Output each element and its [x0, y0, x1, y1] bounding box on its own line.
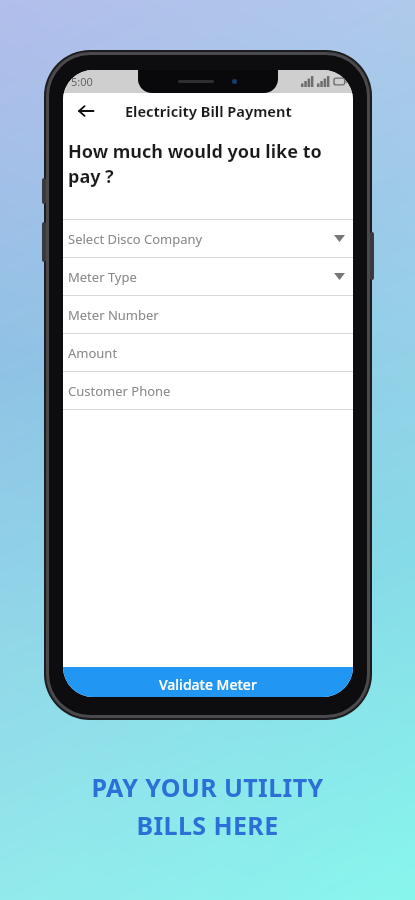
button[interactable]: Select Disco Company	[63, 219, 353, 257]
button[interactable]: Customer Phone	[63, 371, 353, 409]
button[interactable]: Meter Type	[63, 257, 353, 295]
staticText: 5:00	[71, 74, 93, 89]
staticText: Validate Meter	[159, 675, 257, 694]
staticText: Electricity Bill Payment	[125, 101, 292, 121]
staticText: BILLS HERE	[136, 808, 279, 842]
staticText: PAY YOUR UTILITY	[91, 770, 324, 804]
staticText: Customer Phone	[68, 382, 171, 400]
button[interactable]: Validate Meter	[63, 667, 353, 697]
button[interactable]: Meter Number	[63, 295, 353, 333]
button[interactable]: Amount	[63, 333, 353, 371]
staticText: pay ?	[68, 164, 114, 189]
staticText: Meter Type	[68, 268, 137, 286]
button[interactable]: Back	[69, 94, 103, 128]
staticText: How much would you like to	[68, 139, 322, 164]
staticText: Select Disco Company	[68, 230, 203, 248]
staticText: Meter Number	[68, 306, 159, 324]
staticText: Amount	[68, 344, 118, 362]
